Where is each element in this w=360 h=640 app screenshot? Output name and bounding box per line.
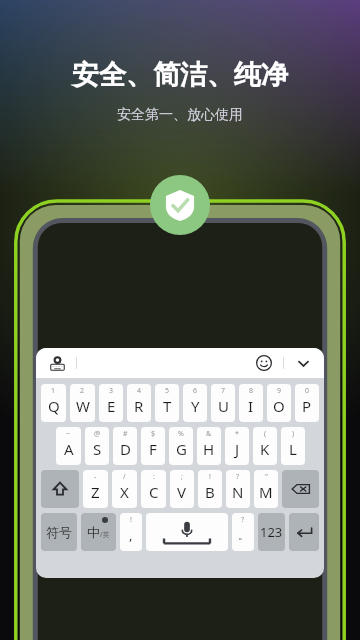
staticText: # — [123, 429, 128, 439]
staticText: A — [64, 439, 74, 459]
button[interactable]: 1 — [41, 384, 66, 422]
button[interactable]: : — [141, 470, 166, 508]
staticText: V — [177, 482, 187, 502]
staticText: $ — [151, 429, 156, 439]
staticText: J — [235, 439, 240, 459]
staticText: % — [178, 429, 184, 439]
button[interactable]: ? — [226, 470, 250, 508]
button[interactable]: * — [225, 427, 249, 465]
button[interactable]: & — [197, 427, 221, 465]
staticText: ! — [130, 515, 132, 525]
staticText: R — [134, 396, 144, 416]
staticText: Y — [191, 396, 200, 416]
staticText: X — [120, 482, 129, 502]
staticText: B — [205, 482, 215, 502]
staticText: E — [107, 396, 116, 416]
button[interactable]: 7 — [211, 384, 235, 422]
staticText: C — [149, 482, 159, 502]
staticText: O — [273, 396, 285, 416]
button[interactable]: ; — [170, 470, 194, 508]
staticText: 3 — [109, 386, 114, 396]
staticText: : — [153, 472, 155, 482]
staticText: / — [123, 472, 126, 482]
staticText: 123 — [260, 523, 283, 541]
button[interactable]: 2 — [70, 384, 95, 422]
staticText: , — [129, 526, 133, 544]
button[interactable]: Enter — [289, 513, 319, 551]
button[interactable]: 123 — [258, 513, 285, 551]
staticText: D — [120, 439, 131, 459]
button[interactable]: 6 — [183, 384, 207, 422]
staticText: T — [163, 396, 172, 416]
staticText: 安全第一、放心使用 — [117, 106, 243, 124]
staticText: 1 — [51, 386, 56, 396]
button[interactable]: ( — [253, 427, 277, 465]
button[interactable]: Input method — [46, 352, 68, 374]
staticText: - — [94, 472, 97, 482]
staticText: L — [289, 439, 297, 459]
button[interactable]: " — [254, 470, 278, 508]
staticText: S — [93, 439, 102, 459]
button[interactable]: % — [169, 427, 193, 465]
button[interactable]: ) — [281, 427, 305, 465]
button[interactable]: 8 — [239, 384, 263, 422]
button[interactable]: Emoji — [253, 352, 275, 374]
staticText: 7 — [221, 386, 226, 396]
button[interactable]: 0 — [295, 384, 319, 422]
staticText: /英 — [100, 530, 110, 540]
staticText: U — [218, 396, 229, 416]
button[interactable]: ! — [198, 470, 222, 508]
staticText: ) — [292, 429, 295, 439]
button[interactable]: $ — [141, 427, 165, 465]
button[interactable]: ? — [232, 513, 254, 551]
staticText: 8 — [249, 386, 254, 396]
staticText: 6 — [193, 386, 198, 396]
button[interactable]: Backspace — [282, 470, 319, 508]
staticText: 。 — [238, 528, 249, 542]
staticText: 中 — [87, 524, 100, 540]
button[interactable]: 符号 — [41, 513, 77, 551]
button[interactable]: 3 — [99, 384, 123, 422]
button[interactable]: - — [83, 470, 108, 508]
button[interactable]: @ — [85, 427, 109, 465]
button[interactable]: 中 — [81, 513, 116, 551]
staticText: @ — [94, 429, 101, 439]
button[interactable]: Shift — [41, 470, 79, 508]
staticText: W — [76, 396, 90, 416]
staticText: N — [232, 482, 244, 502]
staticText: " — [265, 472, 268, 482]
staticText: * — [235, 429, 239, 439]
staticText: P — [302, 396, 312, 416]
staticText: ~ — [66, 429, 71, 439]
staticText: ( — [264, 429, 267, 439]
staticText: ! — [209, 472, 211, 482]
button[interactable]: Security verified — [150, 175, 210, 235]
button[interactable]: 9 — [267, 384, 291, 422]
staticText: ; — [181, 472, 183, 482]
staticText: 5 — [165, 386, 170, 396]
staticText: 4 — [137, 386, 142, 396]
staticText: & — [206, 429, 212, 439]
button[interactable]: Space, voice input — [146, 513, 228, 551]
button[interactable]: ~ — [56, 427, 81, 465]
staticText: 符号 — [46, 524, 72, 540]
staticText: 安全、简洁、纯净 — [72, 58, 288, 92]
staticText: Q — [48, 396, 60, 416]
staticText: 9 — [277, 386, 282, 396]
staticText: I — [248, 396, 254, 416]
button[interactable]: # — [113, 427, 137, 465]
button[interactable]: / — [112, 470, 137, 508]
button[interactable]: 4 — [127, 384, 151, 422]
button[interactable]: Hide keyboard — [292, 352, 314, 374]
staticText: K — [260, 439, 270, 459]
button[interactable]: 5 — [155, 384, 179, 422]
staticText: Z — [91, 482, 100, 502]
staticText: M — [259, 482, 273, 502]
staticText: G — [176, 439, 187, 459]
button[interactable]: ! — [120, 513, 142, 551]
staticText: H — [203, 439, 215, 459]
staticText: 2 — [80, 386, 85, 396]
staticText: ? — [241, 515, 245, 525]
staticText: 0 — [305, 386, 310, 396]
staticText: ? — [236, 472, 240, 482]
